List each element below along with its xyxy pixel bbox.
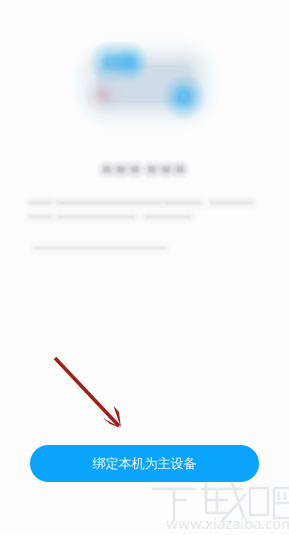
button[interactable]: 绑定本机为主设备	[30, 445, 259, 482]
staticText: www.xiazaiba.com	[166, 513, 289, 533]
staticText: 绑定本机为主设备	[92, 455, 196, 472]
